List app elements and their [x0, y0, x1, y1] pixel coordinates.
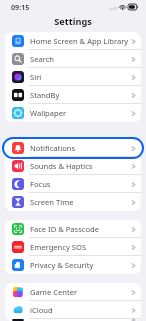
- button[interactable]: Screen Time: [5, 193, 141, 211]
- button[interactable]: Wallet & Apple Pay: [5, 319, 141, 321]
- button[interactable]: iCloud: [5, 301, 141, 319]
- other: Notifications selected: [2, 137, 144, 159]
- staticText: Emergency SOS: [30, 242, 131, 252]
- button[interactable]: Search: [5, 50, 141, 68]
- staticText: Privacy & Security: [30, 260, 131, 270]
- staticText: Notifications: [30, 143, 131, 153]
- staticText: StandBy: [30, 90, 131, 100]
- staticText: Siri: [30, 72, 131, 82]
- button[interactable]: StandBy: [5, 86, 141, 104]
- staticText: Screen Time: [30, 197, 131, 207]
- button[interactable]: Siri: [5, 68, 141, 86]
- staticText: iCloud: [30, 305, 131, 315]
- staticText: Home Screen & App Library: [30, 36, 131, 46]
- button[interactable]: Privacy & Security: [5, 256, 141, 274]
- button[interactable]: Wallpaper: [5, 104, 141, 122]
- button[interactable]: Emergency SOS: [5, 238, 141, 256]
- button[interactable]: Sounds & Haptics: [5, 157, 141, 175]
- button[interactable]: Game Center: [5, 283, 141, 301]
- button[interactable]: Focus: [5, 175, 141, 193]
- button[interactable]: Home Screen & App Library: [5, 32, 141, 50]
- staticText: Search: [30, 54, 131, 64]
- staticText: Focus: [30, 179, 131, 189]
- staticText: Settings: [0, 15, 146, 28]
- staticText: Wallpaper: [30, 108, 131, 118]
- staticText: Game Center: [30, 287, 131, 297]
- staticText: Sounds & Haptics: [30, 161, 131, 171]
- staticText: Face ID & Passcode: [30, 224, 131, 234]
- button[interactable]: Face ID & Passcode: [5, 220, 141, 238]
- button[interactable]: Notifications: [5, 139, 141, 157]
- staticText: 09:15: [11, 2, 30, 12]
